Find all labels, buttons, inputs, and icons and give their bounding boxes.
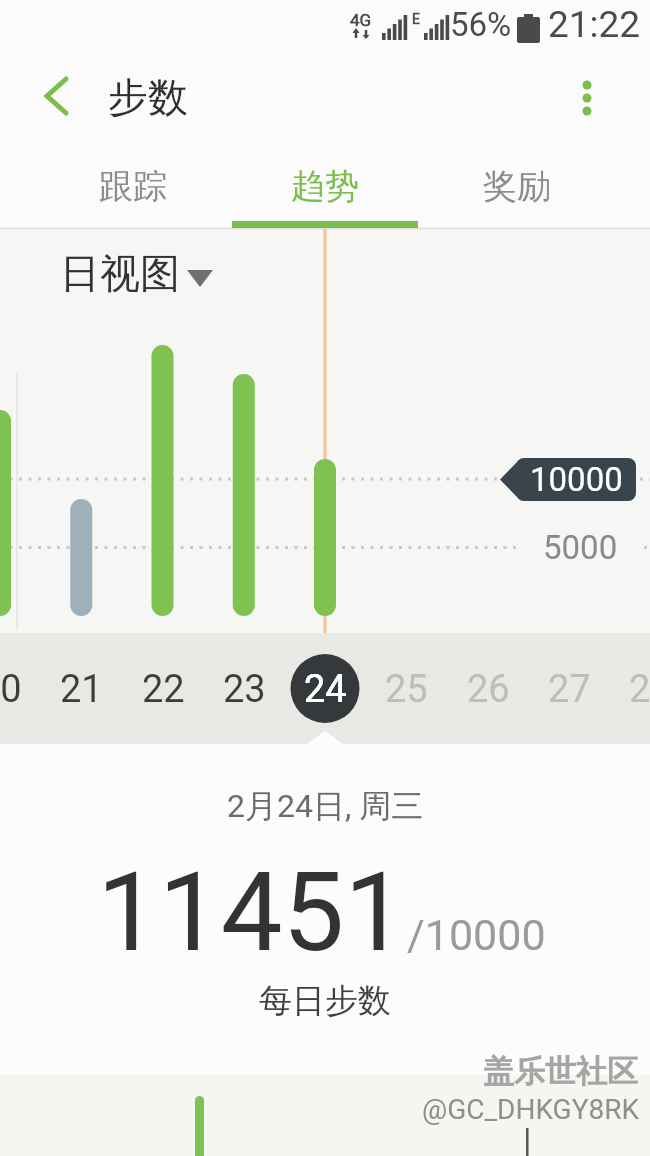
staticText: 56% xyxy=(450,5,512,44)
staticText: 21:22 xyxy=(548,3,641,46)
button[interactable]: 22 xyxy=(121,664,205,714)
staticText: 26 xyxy=(467,667,510,712)
button[interactable]: 日视图 xyxy=(60,248,214,298)
staticText: @GC_DHKGY8RK xyxy=(422,1093,640,1126)
staticText: 24 xyxy=(304,667,347,712)
staticText: 日视图 xyxy=(60,248,180,298)
staticText: 步数 xyxy=(108,72,188,122)
staticText: 10000 xyxy=(530,460,623,499)
button[interactable]: 趋势 xyxy=(250,162,400,210)
button[interactable]: 23 xyxy=(202,664,286,714)
staticText: 盖乐世社区 xyxy=(483,1052,638,1090)
staticText: 23 xyxy=(223,667,266,712)
staticText: 24 xyxy=(304,667,347,712)
button[interactable]: 25 xyxy=(364,664,448,714)
staticText: 奖励 xyxy=(483,165,551,208)
staticText: 4G xyxy=(350,10,372,30)
button[interactable] xyxy=(563,72,611,120)
staticText: 2月24日, 周三 xyxy=(227,786,424,826)
button[interactable]: 27 xyxy=(527,664,611,714)
button[interactable]: 奖励 xyxy=(442,162,592,210)
button[interactable]: 21 xyxy=(39,664,123,714)
button[interactable]: 20 xyxy=(0,664,42,714)
staticText: 28 xyxy=(629,667,650,712)
button[interactable]: 跟踪 xyxy=(58,162,208,210)
staticText: 跟踪 xyxy=(99,165,167,208)
staticText: 21 xyxy=(60,667,103,712)
staticText: 27 xyxy=(548,667,591,712)
staticText: 每日步数 xyxy=(259,980,391,1022)
staticText: E xyxy=(412,11,420,27)
staticText: 11451 xyxy=(97,848,407,977)
button[interactable]: 24 xyxy=(283,664,367,714)
button[interactable]: 24 xyxy=(290,664,360,714)
staticText: 25 xyxy=(385,667,428,712)
staticText: 趋势 xyxy=(291,165,359,208)
staticText: 20 xyxy=(0,667,22,712)
staticText: 22 xyxy=(142,667,185,712)
staticText: /10000 xyxy=(407,910,546,960)
button[interactable]: 28 xyxy=(608,664,650,714)
button[interactable] xyxy=(30,70,82,122)
staticText: 5000 xyxy=(543,528,618,567)
button[interactable]: 26 xyxy=(446,664,530,714)
